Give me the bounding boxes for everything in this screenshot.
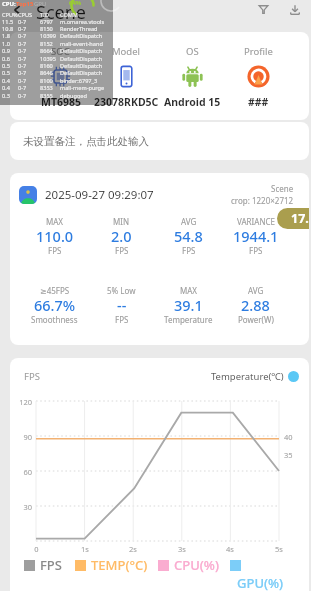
staticText: DefaultDispatch [60, 55, 103, 63]
staticText: CPU(%) [174, 556, 219, 574]
staticText: 11.5 [2, 18, 18, 26]
staticText: 35 [284, 450, 293, 460]
staticText: 0-7 [18, 84, 40, 92]
staticText: 2.88 [241, 295, 270, 315]
staticText: mali-mem-purge [60, 84, 105, 92]
staticText: OS [186, 45, 199, 58]
staticText: FPS [40, 556, 62, 574]
staticText: 0-7 [18, 69, 40, 77]
staticText: CPU% [2, 11, 18, 19]
staticText: MAX [180, 285, 198, 296]
staticText: 66.7% [34, 295, 76, 315]
staticText: 8100 [40, 77, 60, 85]
staticText: TEMP(°C) [91, 556, 148, 574]
staticText: 10395 [40, 55, 60, 63]
button[interactable]: Filter [254, 0, 273, 19]
staticText: FPS [182, 245, 196, 256]
staticText: DefaultDispatch [60, 32, 103, 40]
staticText: 5s [275, 544, 283, 554]
button[interactable]: 未设置备注，点击此处输入 [10, 122, 309, 160]
staticText: 1.8 [2, 32, 18, 40]
staticText: MIN [113, 216, 130, 227]
staticText: 90 [23, 432, 32, 442]
staticText: 30 [23, 502, 32, 512]
staticText: 0-7 [18, 18, 40, 26]
staticText: Temperature [164, 314, 213, 325]
staticText: 2s [129, 544, 137, 554]
staticText: FPS [48, 245, 62, 256]
staticText: ≥45FPS [40, 285, 70, 296]
staticText: DefaultDispatch [60, 62, 103, 70]
staticText: 0.4 [2, 77, 18, 85]
staticText: 0-7 [18, 92, 40, 100]
staticText: 0-7 [18, 77, 40, 85]
staticText: VARIANCE [237, 216, 275, 227]
staticText: 10399 [40, 32, 60, 40]
staticText: GPU(%) [237, 574, 284, 591]
staticText: 4s [226, 544, 234, 554]
staticText: 8646 [40, 69, 60, 77]
staticText: DefaultDispatch [60, 47, 103, 55]
staticText: MT6985 [41, 95, 81, 109]
staticText: Scene [271, 183, 294, 194]
staticText: 0-7 [18, 55, 40, 63]
staticText: 0 [34, 544, 39, 554]
staticText: 0-7 [18, 62, 40, 70]
staticText: 8664 [40, 47, 60, 55]
staticText: Power(W) [238, 314, 274, 325]
staticText: Android 15 [164, 95, 221, 109]
staticText: binder:6797_3 [60, 77, 98, 85]
staticText: 40 [284, 432, 293, 442]
staticText: 0-7 [18, 25, 40, 33]
staticText: mali-event-hand [60, 40, 103, 48]
staticText: 10.8 [2, 25, 18, 33]
staticText: 120 [19, 397, 32, 407]
staticText: FPS [115, 245, 129, 256]
button[interactable]: Temperature(℃) [211, 370, 299, 382]
staticText: 0-7 [18, 40, 40, 48]
staticText: 0.5 [2, 62, 18, 70]
staticText: TID [40, 11, 60, 19]
staticText: 5% Low [107, 285, 136, 296]
staticText: 23078RKD5C [94, 95, 159, 109]
staticText: m.omarea.vtools [60, 18, 105, 26]
staticText: 0-7 [18, 32, 40, 40]
staticText: 0.6 [2, 55, 18, 63]
staticText: Temperature(℃) [211, 370, 284, 382]
staticText: RenderThread [60, 25, 98, 33]
staticText: Model [112, 45, 141, 58]
staticText: FPS [249, 245, 263, 256]
button[interactable]: Back [7, 0, 27, 19]
staticText: COMM [60, 11, 78, 19]
staticText: 1.0 [2, 40, 18, 48]
staticText: 3s [178, 544, 186, 554]
staticText: 6797 [40, 18, 60, 26]
staticText: AVG [181, 216, 197, 227]
button[interactable]: FPS [24, 556, 62, 574]
staticText: SOC [51, 45, 70, 58]
staticText: CPUS [18, 11, 40, 19]
staticText: 8353 [40, 84, 60, 92]
staticText: 0.3 [2, 92, 18, 100]
staticText: crop: 1220×2712 [231, 195, 294, 206]
staticText: 0.9 [2, 47, 18, 55]
staticText: DefaultDispatch [60, 69, 103, 77]
staticText: 60 [23, 467, 32, 477]
staticText: 2.0 [111, 226, 132, 246]
button[interactable]: TEMP(°C) [75, 556, 148, 574]
staticText: Smoothness [31, 314, 78, 325]
staticText: 未设置备注，点击此处输入 [23, 135, 149, 148]
staticText: -- [117, 295, 127, 315]
staticText: 39.1 [174, 295, 203, 315]
staticText: 8160 [40, 62, 60, 70]
button[interactable]: Download [285, 0, 304, 19]
staticText: 8152 [40, 40, 60, 48]
staticText: 8150 [40, 25, 60, 33]
staticText: 8355 [40, 92, 60, 100]
staticText: 110.0 [36, 226, 74, 246]
staticText: 1s [81, 544, 89, 554]
staticText: 0-7 [18, 47, 40, 55]
staticText: 17.0 [291, 210, 309, 227]
button[interactable]: CPU(%) [158, 556, 219, 574]
